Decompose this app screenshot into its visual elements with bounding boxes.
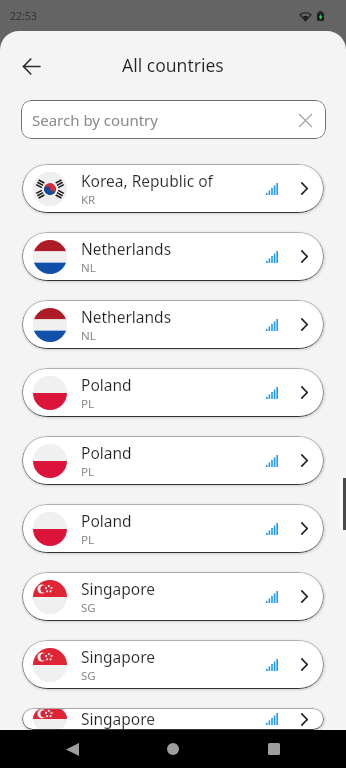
button[interactable]: Clear search: [293, 108, 317, 132]
button[interactable]: Singapore: [22, 640, 324, 689]
button[interactable]: Korea, Republic of: [22, 164, 324, 213]
staticText: PL: [81, 396, 94, 412]
button[interactable]: Netherlands: [22, 232, 324, 281]
staticText: Poland: [81, 442, 132, 463]
staticText: Search by country: [32, 110, 158, 130]
staticText: Poland: [81, 374, 132, 395]
staticText: Netherlands: [81, 238, 172, 259]
staticText: SG: [81, 600, 96, 616]
staticText: PL: [81, 532, 94, 548]
staticText: KR: [81, 192, 96, 208]
staticText: PL: [81, 464, 94, 480]
staticText: NL: [81, 260, 96, 276]
button[interactable]: Singapore: [22, 708, 324, 730]
button[interactable]: Netherlands: [22, 300, 324, 349]
button[interactable]: Home: [156, 732, 190, 766]
staticText: SG: [81, 668, 96, 684]
staticText: Netherlands: [81, 306, 172, 327]
staticText: Korea, Republic of: [81, 170, 213, 191]
button[interactable]: Back: [55, 732, 89, 766]
button[interactable]: Search by country: [21, 100, 326, 139]
staticText: 22:53: [10, 9, 37, 23]
button[interactable]: Poland: [22, 504, 324, 553]
button[interactable]: Poland: [22, 436, 324, 485]
staticText: Singapore: [81, 646, 156, 667]
button[interactable]: Recent apps: [257, 732, 291, 766]
button[interactable]: Poland: [22, 368, 324, 417]
button[interactable]: Back: [11, 46, 51, 86]
staticText: All countries: [122, 53, 224, 77]
staticText: Singapore: [81, 578, 156, 599]
staticText: Singapore: [81, 708, 156, 729]
staticText: NL: [81, 328, 96, 344]
staticText: Poland: [81, 510, 132, 531]
button[interactable]: Singapore: [22, 572, 324, 621]
